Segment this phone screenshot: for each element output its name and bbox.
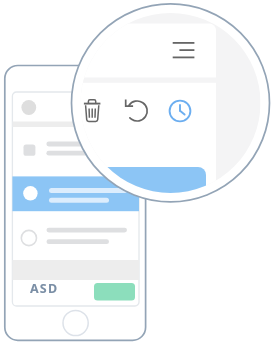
button[interactable]: Zoomed toolbar illustration: [0, 0, 275, 346]
staticText: ASD: [30, 280, 59, 297]
